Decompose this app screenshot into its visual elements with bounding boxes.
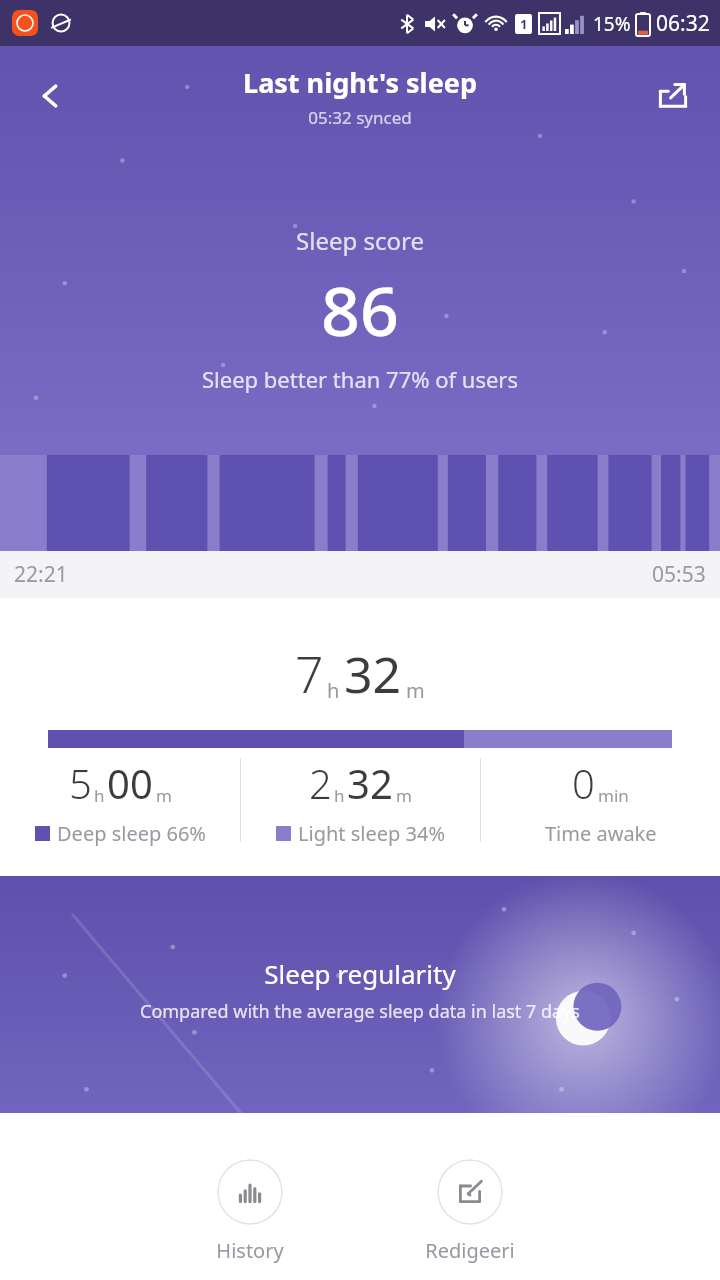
- staticText: 7: [295, 640, 324, 708]
- other: History: [217, 1159, 283, 1225]
- staticText: h: [94, 784, 105, 807]
- staticText: 15%: [593, 11, 631, 37]
- button[interactable]: Share: [644, 67, 702, 125]
- staticText: h: [327, 677, 340, 704]
- staticText: Sleep regularity: [264, 956, 456, 991]
- staticText: min: [598, 784, 629, 807]
- button[interactable]: 5: [0, 748, 240, 876]
- staticText: m: [396, 784, 412, 807]
- staticText: 05:32 synced: [308, 106, 412, 129]
- staticText: Time awake: [545, 820, 657, 847]
- button[interactable]: Back: [20, 66, 80, 126]
- staticText: 0: [572, 756, 595, 810]
- staticText: m: [406, 677, 425, 704]
- button[interactable]: 2: [241, 748, 480, 876]
- button[interactable]: 0: [481, 748, 720, 876]
- staticText: 32: [347, 756, 393, 810]
- staticText: Redigeeri: [425, 1237, 515, 1264]
- staticText: 05:53: [652, 560, 706, 589]
- staticText: 1: [520, 15, 528, 33]
- staticText: Sleep score: [296, 224, 424, 257]
- staticText: h: [334, 784, 345, 807]
- button[interactable]: History: [180, 1145, 320, 1264]
- staticText: 86: [321, 263, 399, 356]
- button[interactable]: Redigeeri: [400, 1145, 540, 1264]
- staticText: 06:32: [656, 9, 710, 38]
- staticText: Compared with the average sleep data in …: [140, 999, 580, 1024]
- staticText: 32: [344, 640, 402, 708]
- staticText: History: [216, 1237, 284, 1264]
- other: Redigeeri: [437, 1159, 503, 1225]
- staticText: Deep sleep 66%: [57, 820, 206, 847]
- staticText: 2: [309, 756, 332, 810]
- staticText: m: [156, 784, 172, 807]
- staticText: Last night's sleep: [243, 64, 477, 101]
- staticText: 00: [107, 756, 153, 810]
- staticText: 5: [69, 756, 92, 810]
- staticText: Sleep better than 77% of users: [202, 364, 518, 394]
- staticText: 22:21: [14, 560, 68, 589]
- button[interactable]: Sleep regularity: [0, 876, 720, 1113]
- staticText: Light sleep 34%: [298, 820, 446, 847]
